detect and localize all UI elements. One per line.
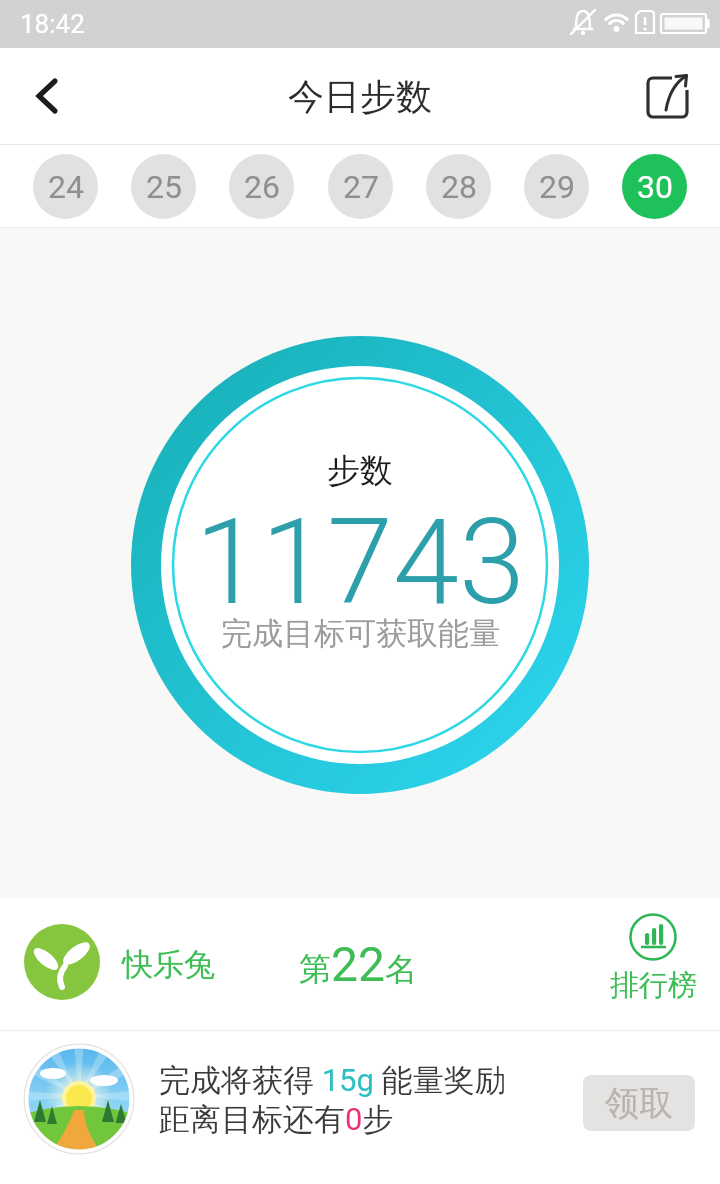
staticText: 26 [244,168,280,206]
staticText: 距离目标还有0步 [159,1100,394,1139]
button[interactable]: 27 [328,154,393,219]
button[interactable]: 29 [524,154,589,219]
staticText: 第 [299,949,331,989]
button[interactable]: 领取 [583,1075,695,1131]
button[interactable]: 30 [622,154,687,219]
staticText: 今日步数 [288,74,432,119]
button[interactable]: 26 [229,154,294,219]
button[interactable]: 28 [426,154,491,219]
staticText: 28 [441,168,477,206]
button[interactable] [0,48,64,144]
button[interactable]: 24 [33,154,98,219]
staticText: 领取 [605,1082,673,1125]
staticText: 29 [539,168,575,206]
staticText: 24 [48,168,84,206]
staticText: 18:42 [20,9,85,39]
staticText: 30 [637,168,673,206]
staticText: 22 [331,936,385,992]
staticText: 排行榜 [610,967,697,1004]
staticText: 27 [343,168,379,206]
staticText: 完成目标可获取能量 [221,614,500,653]
staticText: 快乐兔 [122,945,215,984]
button[interactable]: 25 [131,154,196,219]
staticText: 完成将获得 15g 能量奖励 [159,1061,506,1100]
staticText: 11743 [195,493,526,632]
staticText: 步数 [327,450,393,492]
staticText: 25 [146,168,182,206]
staticText: 名 [385,949,417,989]
button[interactable]: 快乐兔 [0,898,720,1030]
button[interactable]: 排行榜 [599,913,707,1004]
button[interactable]: 完成将获得 15g 能量奖励 [0,1031,720,1184]
button[interactable] [640,48,720,144]
